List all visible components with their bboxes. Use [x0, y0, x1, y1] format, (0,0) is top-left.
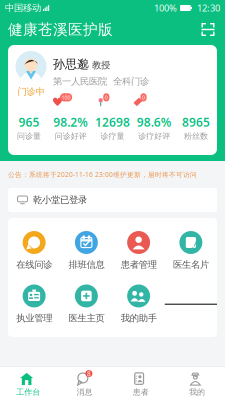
- button[interactable]: 工作台: [0, 370, 56, 397]
- button[interactable]: 患者管理: [112, 231, 165, 270]
- staticText: 0: [142, 94, 145, 101]
- staticText: 医生名片: [173, 259, 209, 270]
- button[interactable]: 扫一扫: [196, 17, 220, 41]
- staticText: 8: [87, 369, 91, 378]
- staticText: 诊疗量: [100, 131, 124, 141]
- staticText: 在线问诊: [16, 259, 52, 270]
- staticText: 965: [18, 114, 39, 130]
- staticText: 问诊好评: [55, 131, 87, 141]
- staticText: 患者管理: [121, 259, 157, 270]
- staticText: 乾小堂已登录: [33, 194, 87, 206]
- staticText: 中国移动: [5, 2, 41, 14]
- button[interactable]: 患者: [112, 370, 169, 397]
- button[interactable]: 医生名片: [165, 231, 217, 270]
- staticText: 粉丝数: [184, 131, 208, 141]
- button[interactable]: 在线问诊: [8, 231, 60, 270]
- staticText: 我的: [189, 387, 205, 397]
- staticText: 100: [62, 94, 71, 101]
- button[interactable]: 我的助手: [112, 284, 165, 324]
- button[interactable]: 8: [56, 370, 112, 397]
- button[interactable]: 乾小堂已登录: [0, 188, 225, 218]
- staticText: 教授: [92, 59, 110, 71]
- staticText: 公告：系统将于2020-11-16 23:00维护更新，届时将不可访问: [8, 170, 197, 179]
- staticText: 0: [105, 94, 108, 101]
- staticText: 100%: [154, 2, 177, 14]
- staticText: 诊疗好评: [138, 131, 170, 141]
- staticText: 医生主页: [68, 312, 104, 324]
- staticText: 98.6%: [137, 114, 172, 130]
- staticText: 健康苍溪医护版: [8, 20, 113, 38]
- staticText: 患者: [133, 387, 149, 397]
- staticText: 排班信息: [68, 259, 104, 270]
- staticText: 消息: [76, 387, 92, 397]
- staticText: 8965: [182, 114, 210, 130]
- staticText: 12:30: [197, 2, 220, 14]
- staticText: 12698: [95, 114, 130, 130]
- staticText: 全科门诊: [113, 76, 149, 87]
- staticText: 问诊量: [17, 131, 41, 141]
- staticText: 第一人民医院: [53, 76, 107, 87]
- staticText: 孙思邈: [53, 57, 89, 72]
- staticText: 我的助手: [121, 312, 157, 324]
- button[interactable]: 排班信息: [60, 231, 112, 270]
- button[interactable]: 执业管理: [8, 284, 60, 324]
- staticText: 门诊中: [17, 86, 44, 97]
- staticText: 工作台: [16, 387, 40, 397]
- staticText: 执业管理: [16, 312, 52, 324]
- button[interactable]: 我的: [169, 370, 225, 397]
- button[interactable]: 医生主页: [60, 284, 112, 324]
- staticText: 98.2%: [53, 114, 88, 130]
